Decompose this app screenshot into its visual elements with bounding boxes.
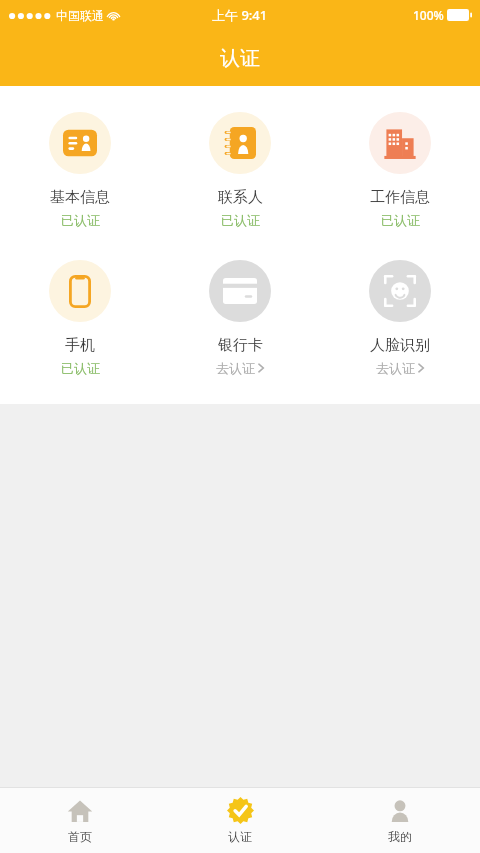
button[interactable]: 认证: [160, 788, 320, 853]
staticText: 人脸识别: [370, 336, 430, 355]
staticText: 已认证: [61, 212, 100, 228]
staticText: 已认证: [61, 360, 100, 376]
button[interactable]: 人脸识别: [320, 258, 480, 378]
staticText: 去认证: [376, 360, 415, 376]
staticText: 已认证: [221, 212, 260, 228]
button[interactable]: 手机: [0, 258, 160, 378]
button[interactable]: 首页: [0, 788, 160, 853]
staticText: 我的: [388, 829, 412, 844]
button[interactable]: 工作信息: [320, 110, 480, 230]
staticText: 首页: [68, 829, 92, 844]
staticText: 基本信息: [50, 188, 110, 207]
staticText: 认证: [220, 46, 260, 71]
staticText: 上午 9:41: [212, 6, 268, 24]
staticText: 100%: [413, 7, 444, 23]
staticText: 去认证: [216, 360, 255, 376]
staticText: 认证: [228, 829, 252, 844]
button[interactable]: 银行卡: [160, 258, 320, 378]
staticText: 银行卡: [218, 336, 263, 355]
staticText: 已认证: [381, 212, 420, 228]
staticText: 中国联通: [56, 8, 104, 23]
staticText: 手机: [65, 336, 95, 355]
staticText: 工作信息: [370, 188, 430, 207]
button[interactable]: 联系人: [160, 110, 320, 230]
staticText: 联系人: [218, 188, 263, 207]
button[interactable]: 我的: [320, 788, 480, 853]
button[interactable]: 基本信息: [0, 110, 160, 230]
